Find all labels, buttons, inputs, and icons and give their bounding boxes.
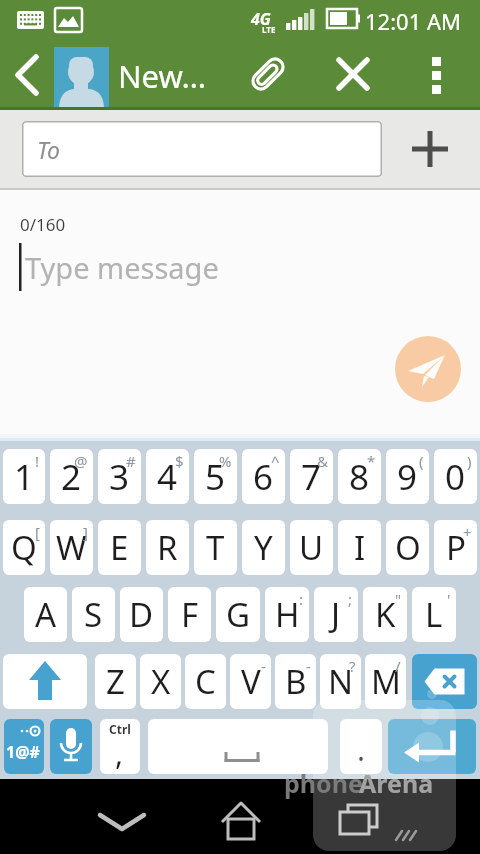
staticText: [ (35, 522, 40, 542)
staticText: : (299, 589, 304, 609)
button[interactable]: . (340, 719, 382, 774)
staticText: G (226, 592, 251, 637)
staticText: / (395, 656, 401, 676)
staticText: 5 (205, 453, 226, 501)
staticText: 7 (301, 453, 322, 501)
staticText: X (151, 659, 171, 704)
button[interactable]: 2 (50, 449, 93, 504)
staticText: phone (284, 766, 363, 800)
staticText: 4 (157, 453, 178, 501)
button[interactable]: U (290, 520, 333, 575)
button[interactable]: 1 (3, 449, 45, 504)
button[interactable]: Y (242, 520, 285, 575)
button[interactable]: To (22, 121, 382, 177)
button[interactable]: G (216, 587, 260, 642)
button[interactable]: D (120, 587, 163, 642)
button[interactable]: C (185, 654, 226, 709)
staticText: , (115, 733, 124, 774)
staticText: + (463, 522, 472, 542)
staticText: & (317, 451, 328, 471)
button[interactable]: F (168, 587, 211, 642)
staticText: # (126, 451, 136, 471)
button[interactable]: T (194, 520, 237, 575)
staticText: 4G (251, 8, 271, 30)
button[interactable]: 0 (434, 449, 477, 504)
staticText: K (375, 592, 396, 637)
button[interactable] (327, 788, 397, 852)
button[interactable]: R (146, 520, 189, 575)
staticText: E (110, 525, 129, 570)
button[interactable] (3, 654, 87, 709)
staticText: M (371, 659, 401, 704)
staticText: 8 (349, 453, 370, 501)
button[interactable]: 6 (242, 449, 285, 504)
button[interactable]: I (338, 520, 381, 575)
button[interactable]: M (365, 654, 406, 709)
staticText: J (331, 592, 341, 637)
button[interactable] (418, 45, 458, 105)
button[interactable] (244, 50, 292, 98)
staticText: C (195, 659, 216, 704)
button[interactable]: Q (3, 520, 45, 575)
staticText: B (285, 659, 307, 704)
staticText: * (367, 451, 376, 471)
button[interactable] (207, 788, 277, 852)
button[interactable]: X (140, 654, 181, 709)
staticText: 6 (253, 453, 274, 501)
button[interactable]: O (386, 520, 429, 575)
button[interactable]: 7 (290, 449, 333, 504)
staticText: 2 (61, 453, 82, 501)
staticText: . (357, 729, 366, 770)
button[interactable] (412, 654, 477, 709)
button[interactable] (329, 50, 377, 98)
button[interactable]: 8 (338, 449, 381, 504)
button[interactable]: Z (95, 654, 136, 709)
button[interactable] (54, 47, 109, 107)
button[interactable] (4, 44, 48, 104)
staticText: P (446, 525, 466, 570)
button[interactable]: S (72, 587, 115, 642)
button[interactable]: 9 (386, 449, 429, 504)
button[interactable]: 4 (146, 449, 189, 504)
button[interactable]: L (412, 587, 456, 642)
staticText: 1@# (6, 741, 40, 763)
button[interactable] (388, 719, 476, 774)
button[interactable]: 3 (98, 449, 141, 504)
button[interactable] (50, 719, 92, 774)
staticText: 12:01 AM (365, 6, 461, 36)
button[interactable]: H (265, 587, 309, 642)
button[interactable]: B (275, 654, 316, 709)
staticText: Arena (359, 766, 434, 800)
staticText: ! (35, 451, 40, 471)
staticText: % (219, 451, 232, 471)
button[interactable]: A (24, 587, 67, 642)
button[interactable]: P (434, 520, 477, 575)
button[interactable] (148, 719, 328, 774)
staticText: ) (467, 451, 472, 471)
button[interactable] (395, 336, 461, 402)
staticText: 3 (109, 453, 130, 501)
staticText: Ctrl (109, 721, 131, 737)
button[interactable]: V (230, 654, 271, 709)
staticText: LTE (262, 24, 276, 35)
staticText: F (181, 592, 199, 637)
button[interactable]: E (98, 520, 141, 575)
staticText: R (157, 525, 178, 570)
button[interactable]: N (320, 654, 361, 709)
button[interactable]: J (314, 587, 358, 642)
staticText: @ (74, 451, 88, 471)
button[interactable]: K (363, 587, 407, 642)
staticText: 1 (14, 453, 35, 501)
button[interactable]: 5 (194, 449, 237, 504)
button[interactable] (400, 119, 460, 179)
staticText: New… (118, 55, 207, 97)
staticText: O (395, 525, 421, 570)
button[interactable]: W (50, 520, 93, 575)
staticText: To (37, 134, 60, 165)
button[interactable] (82, 787, 162, 847)
staticText: L (425, 592, 443, 637)
button[interactable]: 1@# (4, 719, 44, 774)
button[interactable]: Ctrl (100, 719, 140, 774)
staticText: - (261, 656, 266, 676)
staticText: 0/160 (20, 213, 66, 236)
